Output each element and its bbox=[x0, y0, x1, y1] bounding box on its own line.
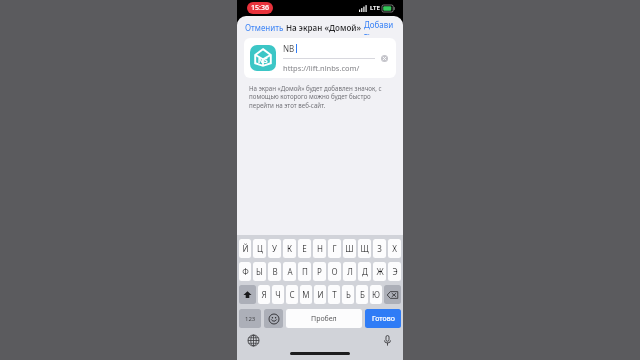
button[interactable]: З bbox=[373, 239, 386, 258]
button[interactable]: У bbox=[268, 239, 281, 258]
button[interactable]: Х bbox=[388, 239, 401, 258]
button[interactable]: Л bbox=[343, 262, 356, 281]
staticText: Т bbox=[332, 289, 337, 300]
staticText: Ш bbox=[345, 243, 354, 254]
button[interactable]: Й bbox=[239, 239, 251, 258]
staticText: NS bbox=[258, 56, 268, 66]
button[interactable]: Готово bbox=[365, 309, 401, 328]
staticText: С bbox=[289, 289, 295, 300]
button[interactable]: Клавиша bbox=[384, 285, 401, 304]
button[interactable]: Эмодзи bbox=[264, 309, 283, 328]
staticText: На экран «Домой» bbox=[286, 22, 362, 33]
staticText: Щ bbox=[360, 243, 369, 254]
button[interactable]: Ь bbox=[342, 285, 354, 304]
staticText: Ф bbox=[242, 266, 249, 277]
button[interactable]: Г bbox=[328, 239, 341, 258]
staticText: М bbox=[302, 289, 310, 300]
staticText: 123 bbox=[245, 315, 256, 323]
staticText: Ы bbox=[256, 266, 263, 277]
button[interactable]: Сменить язык bbox=[245, 332, 261, 348]
button[interactable]: Д bbox=[358, 262, 371, 281]
staticText: Г bbox=[332, 243, 337, 254]
button[interactable]: Ф bbox=[239, 262, 251, 281]
staticText: Отменить bbox=[245, 22, 284, 33]
button[interactable]: Отменить bbox=[243, 19, 286, 36]
staticText: Я bbox=[261, 289, 267, 300]
button[interactable]: Очистить bbox=[375, 49, 393, 67]
staticText: З bbox=[377, 243, 382, 254]
staticText: Х bbox=[392, 243, 397, 254]
button[interactable]: М bbox=[300, 285, 312, 304]
staticText: У bbox=[272, 243, 277, 254]
staticText: И bbox=[317, 289, 324, 300]
button[interactable]: Ж bbox=[373, 262, 386, 281]
staticText: В bbox=[272, 266, 278, 277]
staticText: Э bbox=[392, 266, 398, 277]
button[interactable]: Р bbox=[313, 262, 326, 281]
staticText: К bbox=[287, 243, 292, 254]
staticText: 15:36 bbox=[251, 3, 269, 13]
staticText: Пробел bbox=[311, 314, 337, 324]
button[interactable]: Пробел bbox=[286, 309, 362, 328]
staticText: А bbox=[287, 266, 293, 277]
button[interactable]: Ш bbox=[343, 239, 356, 258]
staticText: Б bbox=[360, 289, 365, 300]
button[interactable]: Добавить bbox=[362, 16, 397, 38]
button[interactable]: Щ bbox=[358, 239, 371, 258]
staticText: Д bbox=[362, 266, 368, 277]
staticText: На экран «Домой» будет добавлен значок, … bbox=[249, 84, 389, 109]
button[interactable]: Клавиша bbox=[239, 285, 256, 304]
staticText: П bbox=[302, 266, 308, 277]
button[interactable]: Ю bbox=[370, 285, 382, 304]
button[interactable]: Э bbox=[388, 262, 401, 281]
button[interactable]: А bbox=[283, 262, 296, 281]
staticText: Добавить bbox=[364, 19, 395, 35]
button[interactable]: К bbox=[283, 239, 296, 258]
staticText: Ю bbox=[372, 289, 380, 300]
button[interactable]: В bbox=[268, 262, 281, 281]
staticText: Л bbox=[347, 266, 353, 277]
staticText: LTE bbox=[370, 4, 380, 12]
staticText: https://lift.nlnbs.com/ bbox=[283, 63, 360, 73]
staticText: NB bbox=[283, 43, 295, 54]
button[interactable]: О bbox=[328, 262, 341, 281]
staticText: Й bbox=[242, 243, 249, 254]
button[interactable]: Т bbox=[328, 285, 340, 304]
button[interactable]: И bbox=[314, 285, 326, 304]
button[interactable]: Н bbox=[313, 239, 326, 258]
staticText: Готово bbox=[372, 314, 395, 324]
button[interactable]: Я bbox=[258, 285, 270, 304]
staticText: Р bbox=[317, 266, 322, 277]
staticText: Ч bbox=[275, 289, 281, 300]
staticText: Ж bbox=[376, 266, 384, 277]
button[interactable]: Ч bbox=[272, 285, 284, 304]
button[interactable]: 123 bbox=[239, 309, 261, 328]
staticText: О bbox=[331, 266, 338, 277]
staticText: Ц bbox=[257, 243, 263, 254]
button[interactable]: С bbox=[286, 285, 298, 304]
button[interactable]: Е bbox=[298, 239, 311, 258]
staticText: Ь bbox=[346, 289, 351, 300]
button[interactable]: Б bbox=[356, 285, 368, 304]
button[interactable]: Диктовка bbox=[379, 332, 395, 348]
staticText: Н bbox=[317, 243, 323, 254]
button[interactable]: П bbox=[298, 262, 311, 281]
staticText: Е bbox=[302, 243, 307, 254]
button[interactable]: Ц bbox=[253, 239, 266, 258]
button[interactable]: Ы bbox=[253, 262, 266, 281]
